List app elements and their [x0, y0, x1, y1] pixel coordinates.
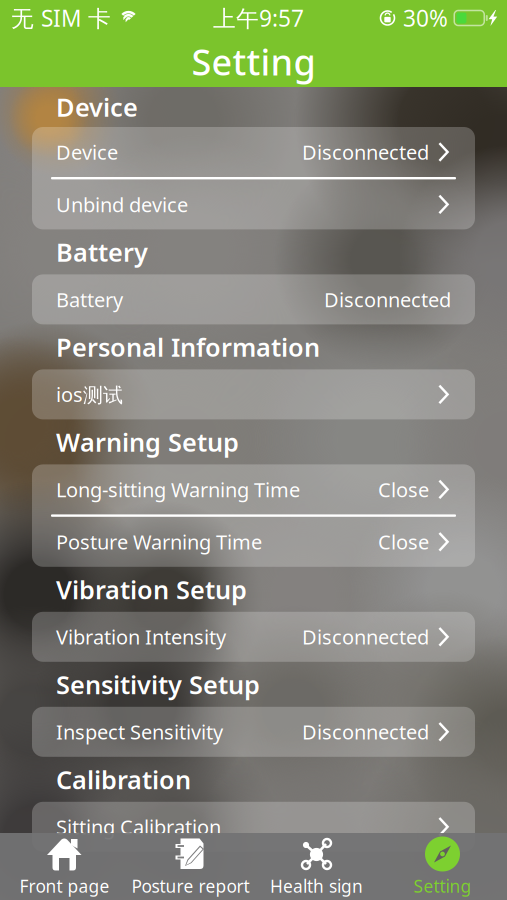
staticText: Battery	[56, 235, 148, 269]
staticText: Disconnected	[302, 139, 429, 165]
button[interactable]: Front page	[1, 833, 127, 900]
staticText: Setting	[413, 874, 471, 897]
staticText: Health sign	[270, 874, 363, 897]
staticText: Unbind device	[56, 191, 188, 218]
staticText: Sitting Calibration	[56, 813, 221, 840]
button[interactable]: Inspect Sensitivity	[32, 707, 475, 757]
button[interactable]: Vibration Intensity	[32, 612, 475, 662]
staticText: Vibration Intensity	[56, 623, 226, 650]
staticText: 上午9:57	[213, 3, 304, 33]
button[interactable]: Battery	[32, 274, 475, 324]
staticText: Sensitivity Setup	[56, 667, 260, 701]
staticText: Posture report	[131, 874, 249, 897]
staticText: Inspect Sensitivity	[56, 718, 223, 745]
button[interactable]: Long-sitting Warning Time	[32, 464, 475, 514]
staticText: 无 SIM 卡	[11, 3, 111, 33]
staticText: 30%	[403, 3, 448, 33]
button[interactable]: Health sign	[253, 833, 379, 900]
button[interactable]: Setting	[379, 833, 505, 900]
staticText: Front page	[19, 874, 109, 897]
staticText: Posture Warning Time	[56, 528, 262, 555]
staticText: Disconnected	[324, 286, 451, 313]
staticText: Battery	[56, 286, 123, 313]
staticText: Personal Information	[56, 330, 320, 364]
staticText: Close	[378, 528, 429, 555]
button[interactable]: Posture report	[127, 833, 253, 900]
staticText: Vibration Setup	[56, 572, 247, 606]
button[interactable]: Device	[32, 127, 475, 177]
button[interactable]: Sitting Calibration	[32, 802, 475, 852]
staticText: Close	[378, 476, 429, 503]
staticText: Device	[56, 90, 138, 124]
staticText: Disconnected	[302, 718, 429, 745]
staticText: Calibration	[56, 762, 191, 796]
button[interactable]: ios测试	[32, 369, 475, 419]
staticText: Warning Setup	[56, 425, 239, 459]
button[interactable]: Posture Warning Time	[32, 517, 475, 567]
staticText: Long-sitting Warning Time	[56, 476, 300, 503]
staticText: Device	[56, 139, 118, 165]
staticText: Setting	[191, 38, 315, 85]
staticText: Disconnected	[302, 623, 429, 650]
button[interactable]: Unbind device	[32, 179, 475, 229]
staticText: ios测试	[56, 381, 123, 408]
